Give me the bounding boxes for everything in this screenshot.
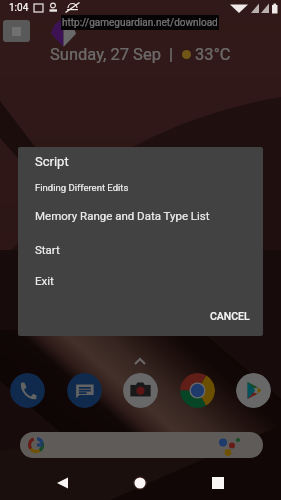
staticText: Exit	[35, 274, 54, 287]
staticText: 33°C	[191, 45, 231, 64]
button[interactable]: Search	[20, 432, 263, 458]
button[interactable]: Messages	[67, 373, 102, 408]
button[interactable]: Finding Different Edits	[18, 179, 263, 195]
staticText: Start	[35, 243, 60, 256]
staticText: CANCEL	[210, 310, 250, 322]
staticText: http://gameguardian.net/download	[62, 17, 218, 29]
button[interactable]: Memory Range and Data Type List	[18, 207, 263, 223]
staticText: Memory Range and Data Type List	[35, 209, 210, 222]
button[interactable]: Chrome	[180, 373, 215, 408]
button[interactable]: Home	[117, 466, 163, 500]
staticText: Script	[35, 154, 69, 169]
staticText: 1:04	[9, 2, 29, 14]
button[interactable]: Play Store	[236, 373, 271, 408]
button[interactable]: Back	[40, 466, 86, 500]
button[interactable]: Phone	[10, 373, 45, 408]
staticText: Finding Different Edits	[35, 182, 129, 193]
button[interactable]: Start	[18, 241, 263, 257]
button[interactable]: Floating widget	[3, 20, 30, 42]
button[interactable]: CANCEL	[205, 306, 255, 326]
button[interactable]: Exit	[18, 272, 263, 288]
staticText: Sunday, 27 Sep |	[50, 45, 182, 64]
button[interactable]: Recents	[195, 466, 241, 500]
button[interactable]: Camera	[123, 373, 158, 408]
